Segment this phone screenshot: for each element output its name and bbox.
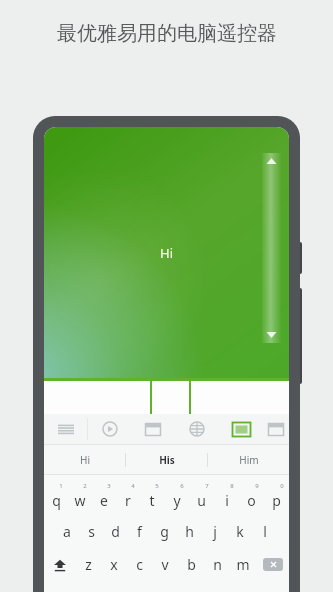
- staticText: Hi: [160, 244, 173, 262]
- button[interactable]: k: [227, 515, 252, 548]
- staticText: v: [161, 555, 169, 574]
- button[interactable]: 2: [68, 479, 92, 515]
- button[interactable]: 1: [44, 479, 68, 515]
- staticText: o: [247, 491, 256, 510]
- button[interactable]: 9: [239, 479, 264, 515]
- button[interactable]: His: [126, 445, 207, 474]
- button[interactable]: s: [79, 515, 103, 548]
- staticText: t: [149, 491, 155, 510]
- staticText: j: [213, 522, 217, 541]
- button[interactable]: Play: [88, 414, 131, 444]
- button[interactable]: a: [55, 515, 79, 548]
- button[interactable]: 6: [164, 479, 189, 515]
- staticText: His: [159, 453, 175, 467]
- button[interactable]: Hi: [44, 445, 125, 474]
- staticText: c: [136, 555, 143, 574]
- staticText: a: [63, 522, 71, 541]
- button[interactable]: Keyboard: [219, 414, 263, 444]
- staticText: g: [160, 522, 169, 541]
- staticText: 7: [205, 482, 209, 490]
- staticText: m: [236, 555, 250, 574]
- staticText: z: [85, 555, 92, 574]
- button[interactable]: f: [127, 515, 152, 548]
- staticText: h: [185, 522, 194, 541]
- button[interactable]: l: [252, 515, 277, 548]
- button[interactable]: j: [202, 515, 227, 548]
- button[interactable]: Shift: [44, 548, 76, 581]
- staticText: 0: [280, 482, 284, 490]
- button[interactable]: x: [101, 548, 126, 581]
- staticText: w: [74, 491, 86, 510]
- button[interactable]: 5: [140, 479, 164, 515]
- staticText: Hi: [80, 453, 90, 467]
- staticText: 3: [107, 482, 111, 490]
- staticText: 1: [59, 482, 63, 490]
- staticText: 8: [230, 482, 234, 490]
- button[interactable]: 0: [264, 479, 289, 515]
- button[interactable]: n: [204, 548, 230, 581]
- staticText: x: [110, 555, 118, 574]
- button[interactable]: Scroll: [262, 153, 281, 343]
- button[interactable]: 8: [214, 479, 239, 515]
- button[interactable]: More: [263, 414, 289, 444]
- button[interactable]: Window: [131, 414, 175, 444]
- button[interactable]: 3: [92, 479, 116, 515]
- staticText: p: [272, 491, 281, 510]
- staticText: 9: [255, 482, 259, 490]
- staticText: 6: [180, 482, 184, 490]
- staticText: y: [173, 491, 181, 510]
- staticText: 2: [83, 482, 87, 490]
- staticText: f: [137, 522, 142, 541]
- button[interactable]: 7: [189, 479, 214, 515]
- staticText: e: [100, 491, 108, 510]
- staticText: q: [52, 491, 61, 510]
- staticText: n: [213, 555, 222, 574]
- button[interactable]: Backspace: [256, 548, 289, 581]
- button[interactable]: h: [177, 515, 202, 548]
- staticText: r: [125, 491, 131, 510]
- staticText: u: [197, 491, 206, 510]
- staticText: l: [263, 522, 267, 541]
- staticText: k: [236, 522, 244, 541]
- staticText: 5: [155, 482, 159, 490]
- button[interactable]: m: [230, 548, 256, 581]
- staticText: 最优雅易用的电脑遥控器: [57, 21, 277, 46]
- button[interactable]: Him: [208, 445, 289, 474]
- staticText: 4: [131, 482, 135, 490]
- button[interactable]: d: [103, 515, 127, 548]
- staticText: Him: [239, 453, 259, 467]
- button[interactable]: b: [178, 548, 204, 581]
- button[interactable]: g: [152, 515, 177, 548]
- button[interactable]: c: [126, 548, 152, 581]
- staticText: i: [225, 491, 229, 510]
- button[interactable]: z: [76, 548, 101, 581]
- button[interactable]: 4: [116, 479, 140, 515]
- staticText: b: [187, 555, 196, 574]
- button[interactable]: v: [152, 548, 178, 581]
- staticText: s: [88, 522, 95, 541]
- staticText: d: [111, 522, 120, 541]
- button[interactable]: Menu: [44, 414, 87, 444]
- button[interactable]: Web: [175, 414, 219, 444]
